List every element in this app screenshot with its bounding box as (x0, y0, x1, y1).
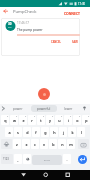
staticText: h (53, 130, 56, 135)
staticText: l (81, 130, 82, 135)
button[interactable]: b (49, 139, 57, 149)
staticText: n (61, 142, 64, 147)
button[interactable] (1, 139, 12, 149)
staticText: powerful (37, 107, 51, 111)
staticText: y (49, 118, 51, 123)
staticText: c (34, 142, 36, 147)
staticText: d (26, 130, 29, 135)
staticText: lower (64, 107, 73, 111)
staticText: The pump power (17, 28, 43, 32)
staticText: , (17, 157, 19, 162)
staticText: p (85, 118, 88, 123)
staticText: , (17, 157, 19, 162)
staticText: f (35, 130, 37, 135)
staticText: v (43, 142, 45, 147)
button[interactable]: o (73, 115, 81, 125)
staticText: j (63, 130, 64, 135)
button[interactable] (1, 9, 9, 17)
staticText: a (8, 130, 11, 135)
button[interactable]: t (37, 115, 45, 125)
button[interactable] (80, 104, 90, 113)
button[interactable]: CONNECT (61, 9, 82, 17)
staticText: i (68, 118, 69, 123)
button[interactable]: f (32, 127, 40, 137)
button[interactable] (1, 154, 13, 164)
button[interactable]: powerful (31, 105, 57, 112)
button[interactable] (17, 170, 29, 180)
staticText: PumpCheck (13, 9, 37, 15)
staticText: g (44, 130, 47, 135)
staticText: u (58, 118, 61, 123)
staticText: min (8, 26, 12, 28)
button[interactable]: i (64, 115, 72, 125)
button[interactable] (40, 170, 52, 180)
staticText: d (26, 130, 29, 135)
staticText: e (22, 118, 25, 123)
staticText: y (49, 118, 51, 123)
button[interactable]: e (19, 115, 27, 125)
staticText: t (40, 118, 42, 123)
button[interactable]: EN·ES (32, 155, 62, 165)
staticText: l (81, 130, 82, 135)
button[interactable] (5, 21, 16, 32)
button[interactable]: a (5, 127, 13, 137)
button[interactable]: w (10, 115, 18, 125)
button[interactable]: d (23, 127, 31, 137)
button[interactable] (62, 170, 74, 180)
button[interactable]: CANCEL (50, 39, 62, 45)
staticText: t (40, 118, 42, 123)
button[interactable]: l (77, 127, 85, 137)
staticText: x (25, 142, 28, 147)
staticText: EN·ES (44, 159, 50, 162)
staticText: 17:46:17 (17, 21, 29, 25)
staticText: n (61, 142, 64, 147)
button[interactable] (38, 88, 50, 100)
staticText: . (66, 157, 68, 162)
staticText: r (31, 118, 33, 123)
button[interactable]: z (13, 139, 21, 149)
button[interactable]: g (41, 127, 49, 137)
button[interactable]: m (67, 139, 75, 149)
button[interactable]: p (82, 115, 90, 125)
staticText: ?123 (3, 157, 9, 161)
button[interactable]: lower (60, 104, 76, 113)
button[interactable]: n (58, 139, 66, 149)
button[interactable]: r (28, 115, 36, 125)
staticText: u (58, 118, 61, 123)
button[interactable]: k (68, 127, 76, 137)
button[interactable]: , (14, 154, 22, 164)
staticText: f (35, 130, 37, 135)
staticText: x (25, 142, 28, 147)
button[interactable]: . (63, 154, 71, 164)
staticText: o (76, 118, 79, 123)
button[interactable]: SAVE (70, 39, 80, 45)
staticText: i (68, 118, 69, 123)
staticText: o (76, 118, 79, 123)
button[interactable]: y (46, 115, 54, 125)
staticText: q (4, 118, 7, 123)
button[interactable]: power (8, 104, 28, 113)
button[interactable]: x (22, 139, 30, 149)
staticText: p (85, 118, 88, 123)
staticText: The pump power (17, 28, 43, 32)
button[interactable]: c (31, 139, 39, 149)
staticText: v (43, 142, 45, 147)
button[interactable]: u (55, 115, 63, 125)
staticText: a (8, 130, 11, 135)
button[interactable]: q (1, 115, 9, 125)
button[interactable]: v (40, 139, 48, 149)
button[interactable]: s (14, 127, 22, 137)
button[interactable] (17, 27, 80, 36)
staticText: h (53, 130, 56, 135)
button[interactable]: j (59, 127, 67, 137)
staticText: s (17, 130, 19, 135)
staticText: q (4, 118, 7, 123)
button[interactable] (78, 155, 87, 164)
staticText: power (13, 107, 23, 111)
staticText: k (71, 130, 74, 135)
button[interactable]: h (50, 127, 58, 137)
staticText: w (13, 118, 16, 123)
staticText: b (52, 142, 55, 147)
button[interactable] (23, 154, 31, 164)
button[interactable] (78, 139, 89, 149)
